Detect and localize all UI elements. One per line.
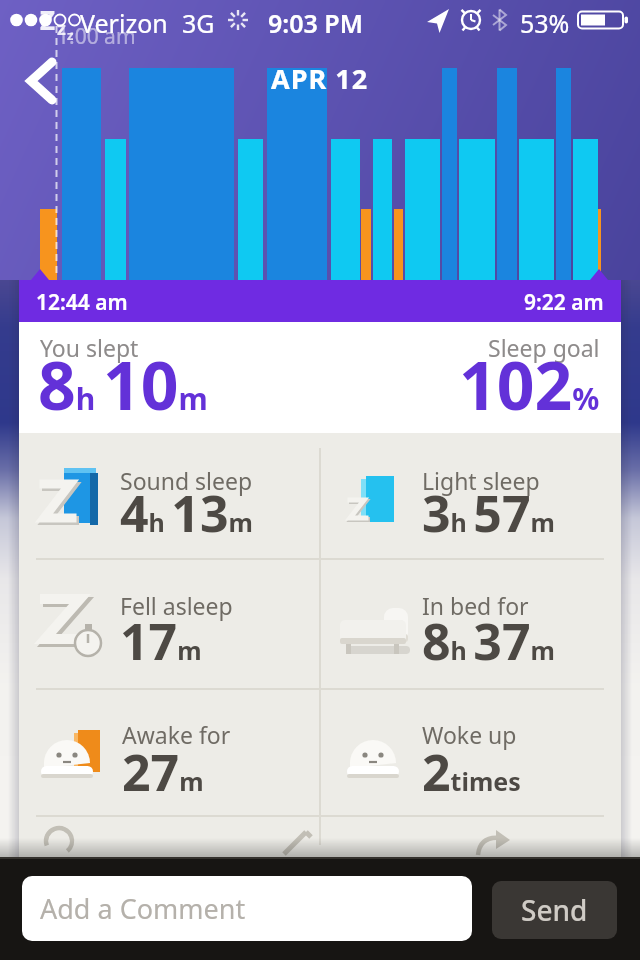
button[interactable] xyxy=(321,561,621,698)
button[interactable] xyxy=(321,699,621,818)
staticText: 2times xyxy=(422,738,521,806)
staticText: In bed for xyxy=(422,590,529,621)
staticText: APR 12 xyxy=(271,60,369,97)
button[interactable] xyxy=(19,561,319,698)
button[interactable]: Send xyxy=(492,881,617,939)
staticText: 9:03 PM xyxy=(268,6,363,40)
staticText: 9:22 am xyxy=(524,288,604,317)
button[interactable] xyxy=(19,433,319,560)
staticText: 4h 13m xyxy=(120,479,253,547)
staticText: 3G xyxy=(182,6,215,40)
staticText: Add a Comment xyxy=(40,890,246,927)
staticText: 8h 10m xyxy=(38,339,208,429)
staticText: 27m xyxy=(122,738,204,806)
staticText: Sound sleep xyxy=(120,465,253,496)
button[interactable] xyxy=(19,699,319,818)
staticText: Send xyxy=(521,891,588,929)
button[interactable]: Add a Comment xyxy=(22,876,472,941)
staticText: You slept xyxy=(40,332,139,363)
staticText: z xyxy=(57,16,66,41)
staticText: 53% xyxy=(520,6,570,40)
staticText: 3h 57m xyxy=(422,479,555,547)
staticText: 17m xyxy=(120,607,202,675)
staticText: 102% xyxy=(459,339,600,429)
staticText: Woke up xyxy=(422,719,517,750)
staticText: Awake for xyxy=(122,719,231,750)
staticText: 1:00 am xyxy=(57,22,136,51)
staticText: Light sleep xyxy=(422,465,540,496)
staticText: Fell asleep xyxy=(120,590,233,621)
staticText: Z xyxy=(40,2,56,37)
staticText: 12:44 am xyxy=(36,288,128,317)
button[interactable] xyxy=(321,433,621,560)
staticText: Verizon xyxy=(80,6,168,40)
staticText: Sleep goal xyxy=(488,332,600,363)
staticText: z xyxy=(67,26,74,44)
button[interactable] xyxy=(16,52,72,112)
staticText: 8h 37m xyxy=(422,607,555,675)
